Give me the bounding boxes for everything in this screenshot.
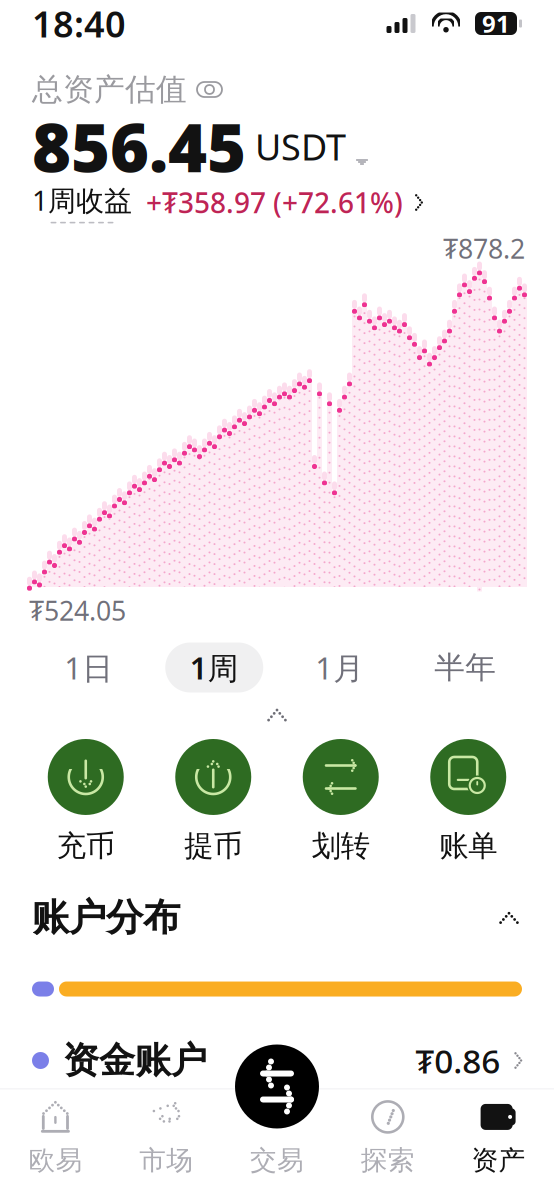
staticText: +₮358.97 (+72.61%) <box>132 184 403 221</box>
button[interactable]: 交易 <box>235 1044 319 1128</box>
staticText: 半年 <box>434 649 496 686</box>
staticText: 1周 <box>190 647 239 688</box>
staticText: 资产 <box>472 1144 526 1177</box>
staticText: ₮0.86 <box>415 1038 500 1083</box>
button[interactable]: 交易 <box>222 1089 332 1185</box>
button[interactable]: 提币 <box>149 739 277 864</box>
button[interactable]: 半年 <box>402 642 528 692</box>
staticText: 账户分布 <box>32 895 180 940</box>
staticText: 探索 <box>361 1144 415 1177</box>
button[interactable]: 账单 <box>404 739 532 864</box>
button[interactable]: 账户分布 <box>0 887 554 947</box>
staticText: 总资产估值 <box>32 71 187 108</box>
button[interactable]: 资金账户 <box>0 1032 554 1088</box>
staticText: 资金账户 <box>63 1038 207 1083</box>
staticText: 1日 <box>64 647 113 688</box>
staticText: 856.45 <box>32 102 246 191</box>
staticText: 18:40 <box>32 0 126 47</box>
button[interactable]: 探索 <box>332 1089 443 1185</box>
button[interactable]: 划转 <box>277 739 404 864</box>
button[interactable]: 1日 <box>26 642 151 692</box>
staticText: 充币 <box>57 828 115 864</box>
button[interactable]: 1周 <box>151 642 277 692</box>
button[interactable]: 充币 <box>22 739 149 864</box>
button[interactable]: 收起图表 <box>0 695 554 733</box>
staticText: 1周收益 <box>32 181 132 219</box>
staticText: 账单 <box>439 828 497 864</box>
button[interactable]: 1周收益 <box>32 185 522 219</box>
button[interactable]: 1月 <box>277 642 402 692</box>
button[interactable]: 市场 <box>111 1089 222 1185</box>
staticText: 划转 <box>312 828 370 864</box>
staticText: 交易 <box>250 1144 304 1177</box>
staticText: 91 <box>482 8 510 39</box>
button[interactable]: 欧易 <box>0 1089 111 1185</box>
button[interactable]: 资产 <box>443 1089 554 1185</box>
staticText: 1月 <box>315 647 364 688</box>
staticText: ₮878.2 <box>443 231 525 266</box>
button[interactable]: 总资产估值 <box>32 73 522 105</box>
staticText: USDT <box>246 123 346 170</box>
staticText: 市场 <box>139 1144 193 1177</box>
staticText: 提币 <box>184 828 242 864</box>
staticText: 欧易 <box>28 1144 82 1177</box>
staticText: ₮524.05 <box>29 593 126 628</box>
